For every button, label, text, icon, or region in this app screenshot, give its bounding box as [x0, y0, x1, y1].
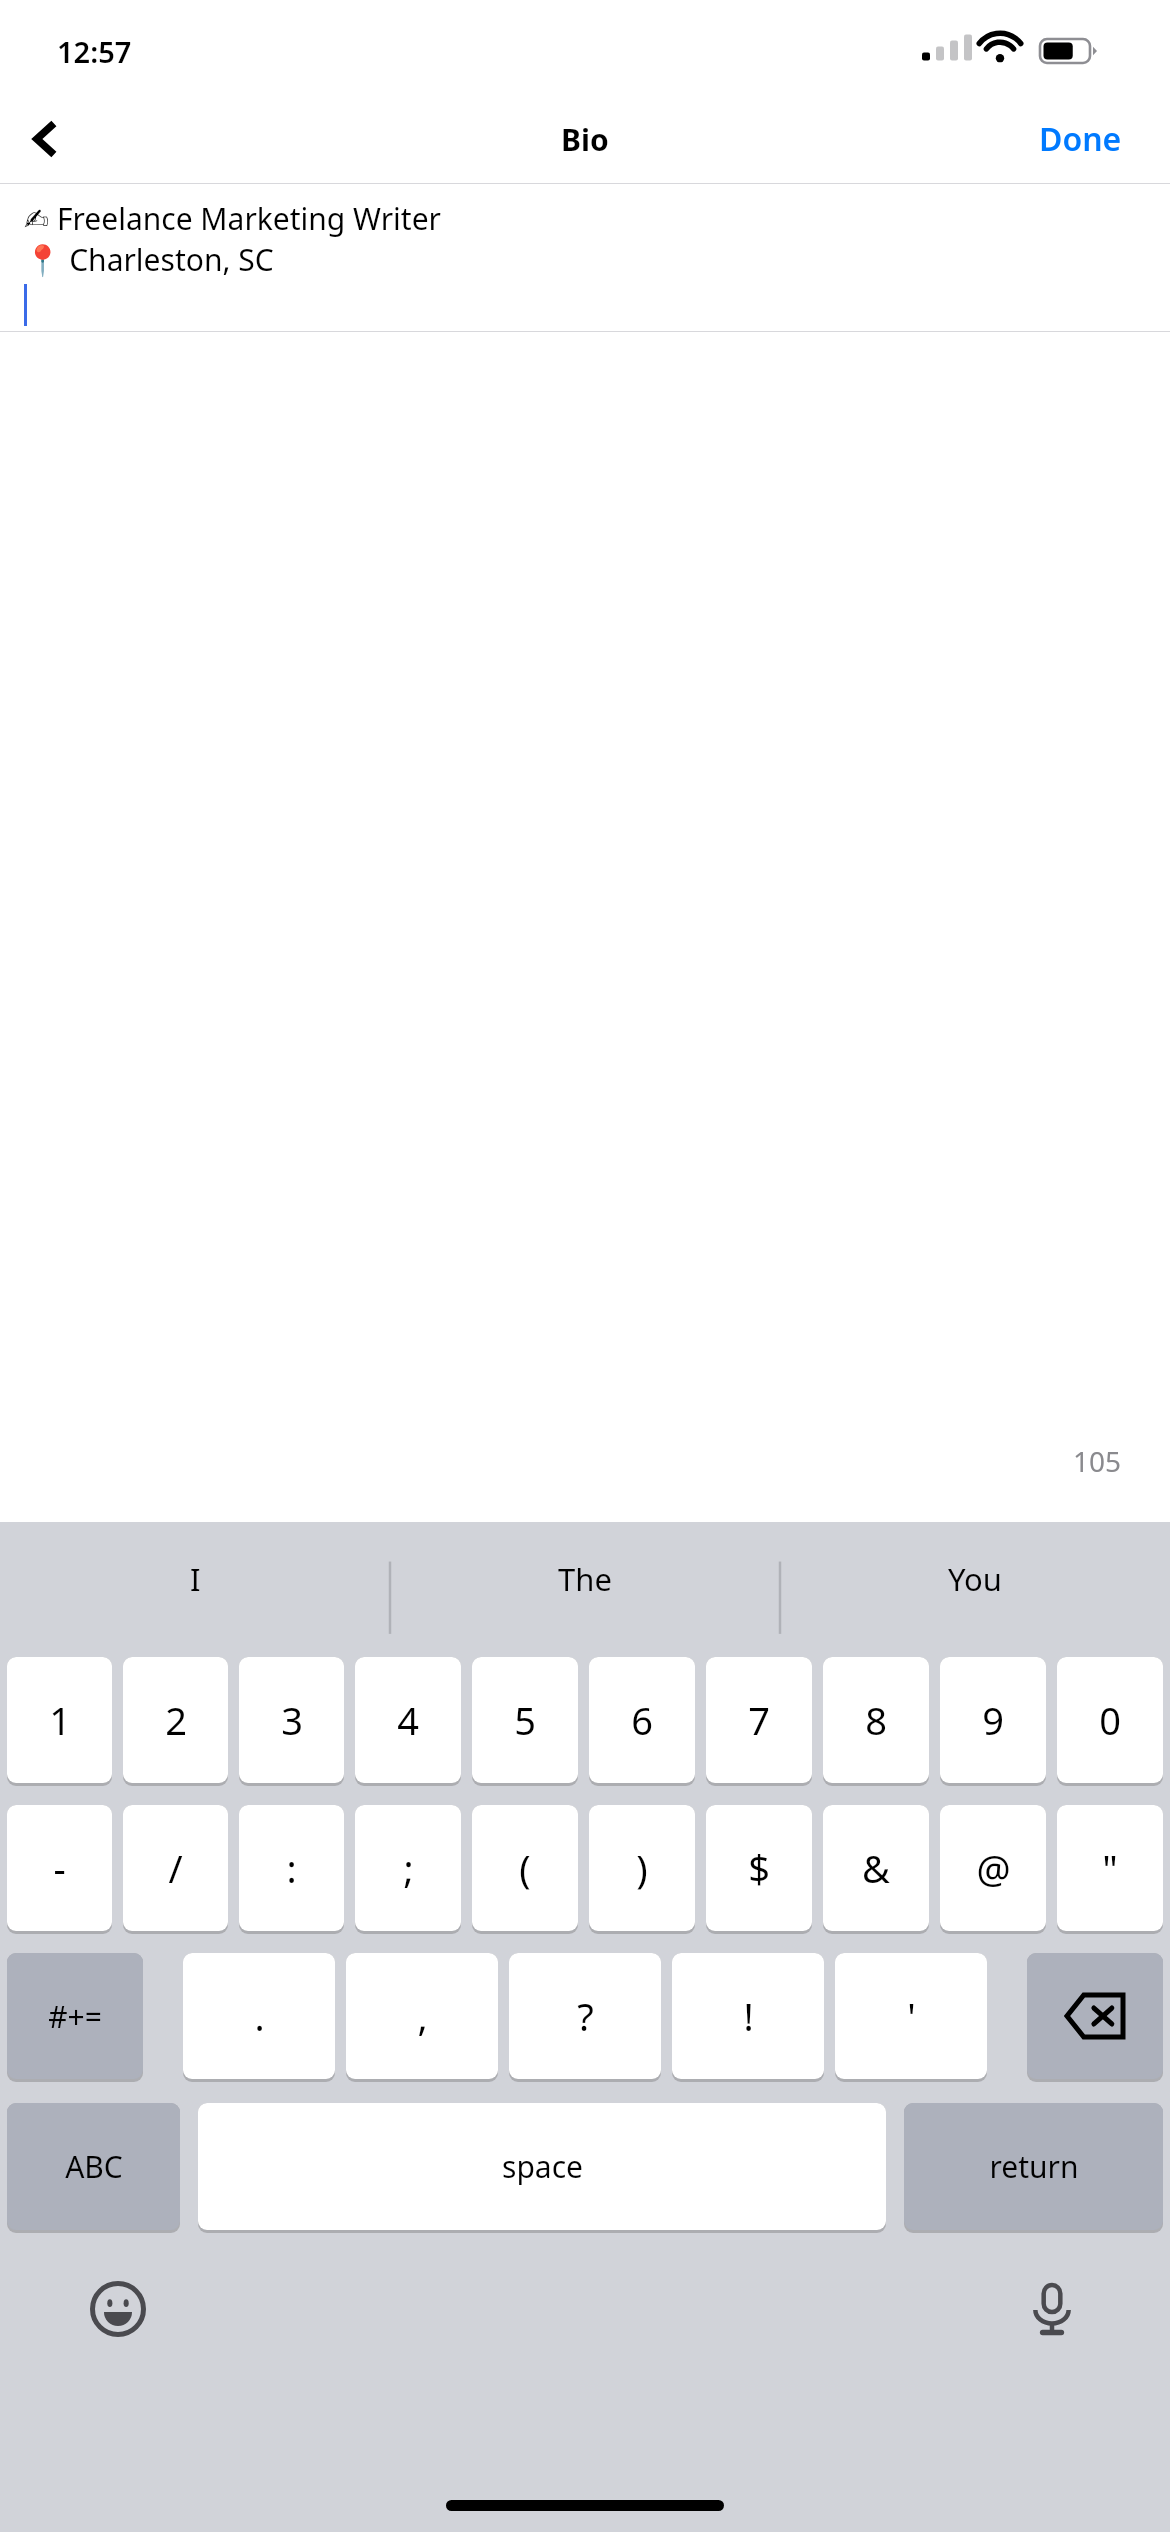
staticText: 7 [748, 1694, 770, 1746]
staticText: ) [636, 1842, 648, 1894]
button[interactable]: I [0, 1522, 390, 1635]
staticText: ' [907, 1990, 916, 2042]
button[interactable]: space [198, 2103, 886, 2230]
staticText: - [53, 1842, 66, 1894]
button[interactable]: 2 [123, 1657, 228, 1783]
staticText: ✍️ Freelance Marketing Writer [24, 198, 441, 239]
staticText: 3 [281, 1694, 303, 1746]
button[interactable]: 0 [1057, 1657, 1163, 1783]
staticText: 5 [514, 1694, 536, 1746]
staticText: & [862, 1842, 890, 1894]
staticText: 6 [631, 1694, 653, 1746]
button[interactable]: $ [706, 1805, 812, 1931]
button[interactable]: @ [940, 1805, 1046, 1931]
staticText: 9 [982, 1694, 1004, 1746]
button[interactable]: , [346, 1953, 498, 2079]
staticText: The [558, 1558, 612, 1600]
staticText: 4 [397, 1694, 419, 1746]
button[interactable]: Dictation [1012, 2269, 1092, 2349]
button[interactable]: 8 [823, 1657, 929, 1783]
staticText: 1 [49, 1694, 71, 1746]
button[interactable]: 6 [589, 1657, 695, 1783]
staticText: space [502, 2146, 583, 2187]
button[interactable]: 9 [940, 1657, 1046, 1783]
button[interactable]: #+= [7, 1953, 143, 2079]
button[interactable]: ✍️ Freelance Marketing Writer [0, 184, 1170, 331]
staticText: return [989, 2146, 1079, 2187]
button[interactable]: return [904, 2103, 1163, 2230]
button[interactable]: 4 [355, 1657, 461, 1783]
button[interactable]: You [780, 1522, 1170, 1635]
button[interactable]: . [183, 1953, 335, 2079]
button[interactable]: ; [355, 1805, 461, 1931]
staticText: 8 [865, 1694, 887, 1746]
staticText: 12:57 [57, 32, 132, 71]
staticText: Bio [561, 119, 609, 160]
staticText: , [417, 1990, 428, 2042]
button[interactable]: & [823, 1805, 929, 1931]
button[interactable]: The [390, 1522, 780, 1635]
button[interactable]: " [1057, 1805, 1163, 1931]
staticText: ( [519, 1842, 531, 1894]
staticText: I [190, 1558, 201, 1600]
button[interactable]: / [123, 1805, 228, 1931]
button[interactable]: ABC [7, 2103, 180, 2230]
button[interactable]: ( [472, 1805, 578, 1931]
staticText: . [254, 1990, 265, 2042]
staticText: ; [403, 1842, 414, 1894]
staticText: " [1102, 1842, 1118, 1894]
button[interactable]: : [239, 1805, 344, 1931]
staticText: 0 [1099, 1694, 1121, 1746]
button[interactable]: 5 [472, 1657, 578, 1783]
button[interactable]: ! [672, 1953, 824, 2079]
staticText: / [168, 1842, 183, 1894]
staticText: You [948, 1558, 1002, 1600]
button[interactable]: ' [835, 1953, 987, 2079]
staticText: $ [748, 1842, 770, 1894]
button[interactable]: Backspace [1027, 1953, 1163, 2079]
staticText: : [286, 1842, 297, 1894]
staticText: Done [1039, 117, 1122, 161]
staticText: ! [743, 1990, 754, 2042]
button[interactable]: 1 [7, 1657, 112, 1783]
button[interactable]: Done [991, 95, 1170, 183]
staticText: @ [976, 1842, 1011, 1894]
button[interactable]: 7 [706, 1657, 812, 1783]
staticText: #+= [48, 1996, 102, 2037]
button[interactable]: Emoji [78, 2269, 158, 2349]
button[interactable]: Back [0, 95, 90, 183]
button[interactable]: ) [589, 1805, 695, 1931]
button[interactable]: ? [509, 1953, 661, 2079]
staticText: ? [577, 1990, 594, 2042]
staticText: 2 [165, 1694, 187, 1746]
button[interactable]: 3 [239, 1657, 344, 1783]
staticText: 105 [1073, 1442, 1122, 1480]
staticText: 📍 Charleston, SC [24, 239, 274, 280]
button[interactable]: - [7, 1805, 112, 1931]
staticText: ABC [65, 2146, 123, 2187]
